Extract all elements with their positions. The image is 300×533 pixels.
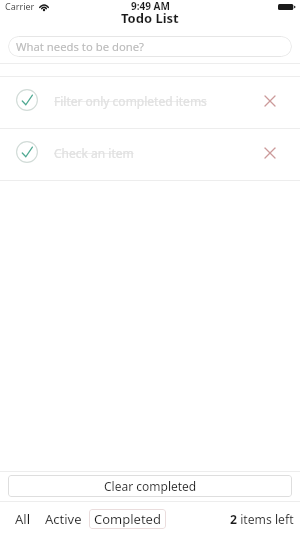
button[interactable]: Delete item [257, 88, 283, 114]
button[interactable]: Toggle completed [0, 77, 300, 128]
staticText: Check an item [54, 145, 257, 161]
button[interactable]: Toggle completed [0, 129, 300, 180]
staticText: Completed [94, 510, 161, 528]
button[interactable]: Clear completed [8, 475, 292, 497]
staticText: What needs to be done? [16, 39, 145, 54]
button[interactable]: Toggle completed [16, 141, 38, 163]
button[interactable]: Delete item [257, 140, 283, 166]
staticText: Clear completed [104, 478, 197, 494]
button[interactable]: All [15, 509, 31, 529]
staticText: 9:49 AM [131, 0, 170, 10]
button[interactable]: What needs to be done? [8, 36, 292, 57]
staticText: Todo List [121, 9, 179, 27]
staticText: Filter only completed items [54, 93, 257, 109]
staticText: All [15, 510, 31, 528]
button[interactable]: Toggle completed [16, 89, 38, 111]
button[interactable]: Active [45, 509, 82, 529]
staticText: Active [45, 510, 82, 528]
staticText: 2 items left [230, 511, 294, 528]
button[interactable]: Completed [89, 509, 166, 529]
staticText: Carrier [5, 0, 35, 11]
